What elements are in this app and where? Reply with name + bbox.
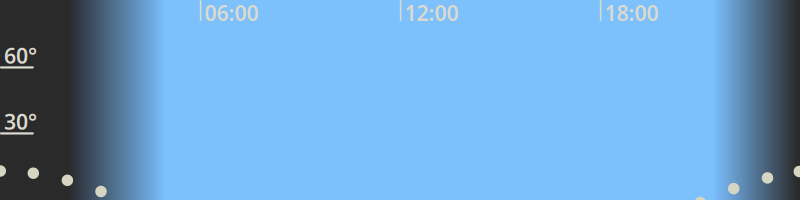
staticText: 18:00 <box>604 0 658 27</box>
staticText: 06:00 <box>204 0 258 27</box>
staticText: 60° <box>4 41 37 70</box>
staticText: 12:00 <box>404 0 458 27</box>
staticText: 30° <box>4 107 37 136</box>
